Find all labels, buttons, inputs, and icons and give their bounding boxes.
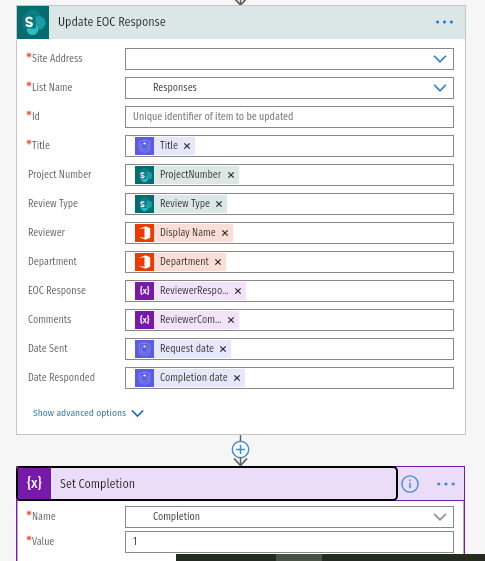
button[interactable]: {x} xyxy=(125,280,454,302)
button[interactable]: Request date xyxy=(125,338,454,360)
staticText: Display Name xyxy=(160,227,216,239)
staticText: Review Type xyxy=(28,198,78,210)
button[interactable]: Completion xyxy=(125,506,454,528)
staticText: Completion date xyxy=(160,372,228,384)
button[interactable]: Update EOC Response xyxy=(16,5,466,39)
button[interactable]: Information xyxy=(397,471,423,497)
staticText: Reviewer xyxy=(28,227,66,239)
staticText: {x} xyxy=(140,315,150,326)
button[interactable]: Display Name xyxy=(125,222,454,244)
button[interactable]: Department xyxy=(125,251,454,273)
staticText: Department xyxy=(28,256,77,268)
button[interactable]: More commands xyxy=(427,5,461,39)
staticText: EOC Response xyxy=(28,285,86,297)
staticText: Comments xyxy=(28,314,72,326)
staticText: 1 xyxy=(133,536,137,548)
button[interactable]: More commands xyxy=(433,471,459,497)
staticText: Value xyxy=(32,536,55,548)
staticText: List Name xyxy=(32,82,73,94)
button[interactable]: {x} xyxy=(125,309,454,331)
staticText: Site Address xyxy=(32,53,83,65)
staticText: ReviewerRespo… xyxy=(160,285,229,297)
staticText: {x} xyxy=(140,286,150,297)
button[interactable]: {x} xyxy=(18,468,396,499)
button[interactable]: Title xyxy=(125,135,454,157)
staticText: ProjectNumber xyxy=(160,169,222,181)
staticText: Department xyxy=(160,256,209,268)
staticText: Review Type xyxy=(160,198,210,210)
button[interactable]: Responses xyxy=(125,77,454,99)
staticText: {x} xyxy=(27,475,42,492)
button[interactable]: Unique identifier of item to be updated xyxy=(125,106,454,128)
staticText: Unique identifier of item to be updated xyxy=(133,111,294,123)
staticText: Date Sent xyxy=(28,343,68,355)
staticText: Completion xyxy=(153,511,200,523)
staticText: Name xyxy=(32,511,56,523)
button[interactable]: 1 xyxy=(125,531,454,553)
staticText: Show advanced options xyxy=(33,407,127,419)
button[interactable]: Review Type xyxy=(125,193,454,215)
staticText: ReviewerCom… xyxy=(160,314,222,326)
staticText: Title xyxy=(160,140,178,152)
staticText: Responses xyxy=(153,82,197,94)
button[interactable]: Show advanced options xyxy=(33,404,143,422)
button[interactable]: ProjectNumber xyxy=(125,164,454,186)
staticText: Id xyxy=(32,111,40,123)
button[interactable]: Completion date xyxy=(125,367,454,389)
staticText: Title xyxy=(32,140,50,152)
staticText: Date Responded xyxy=(28,372,96,384)
staticText: Update EOC Response xyxy=(58,15,166,29)
button[interactable] xyxy=(125,48,454,70)
staticText: Project Number xyxy=(28,169,92,181)
staticText: Request date xyxy=(160,343,214,355)
staticText: Set Completion xyxy=(60,477,136,491)
